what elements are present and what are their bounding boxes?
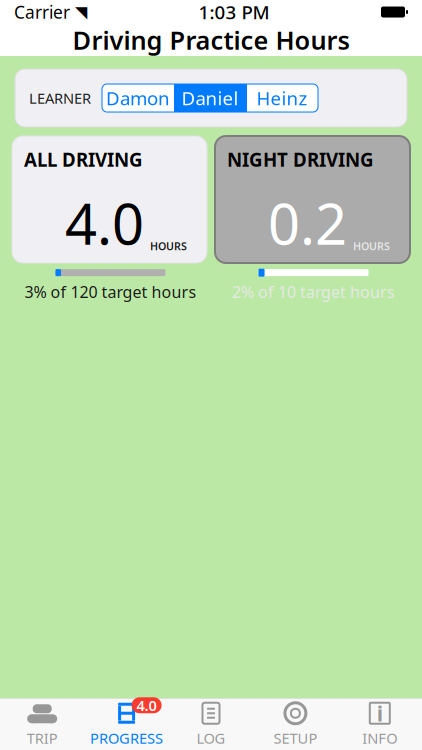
button[interactable]: i xyxy=(338,700,422,748)
button[interactable]: Daniel xyxy=(174,84,246,112)
staticText: ◥ xyxy=(70,3,87,21)
staticText: PROGRESS xyxy=(90,728,163,748)
button[interactable]: SETUP xyxy=(253,700,338,748)
staticText: Heinz xyxy=(256,86,307,110)
staticText: LEARNER xyxy=(29,88,91,108)
staticText: INFO xyxy=(362,728,397,748)
staticText: TRIP xyxy=(27,728,58,748)
staticText: NIGHT DRIVING xyxy=(227,147,374,172)
staticText: HOURS xyxy=(353,239,390,253)
button[interactable]: Heinz xyxy=(246,84,318,112)
staticText: Driving Practice Hours xyxy=(72,23,349,57)
staticText: 0.2 xyxy=(268,186,347,260)
staticText: HOURS xyxy=(150,239,187,253)
staticText: i xyxy=(377,699,383,727)
staticText: SETUP xyxy=(273,728,317,748)
staticText: 4.0 xyxy=(65,186,144,260)
staticText: LOG xyxy=(196,728,225,748)
staticText: Carrier xyxy=(14,0,70,23)
staticText: 2% of 10 target hours xyxy=(232,281,395,302)
button[interactable]: TRIP xyxy=(0,700,84,748)
staticText: 3% of 120 target hours xyxy=(24,281,196,302)
staticText: Daniel xyxy=(181,86,238,110)
staticText: 1:03 PM xyxy=(198,0,269,24)
staticText: 4.0 xyxy=(137,695,157,715)
button[interactable]: Damon xyxy=(102,84,174,112)
button[interactable]: LOG xyxy=(169,700,253,748)
button[interactable]: 4.0 xyxy=(84,700,169,748)
staticText: ALL DRIVING xyxy=(24,147,143,172)
staticText: Damon xyxy=(106,86,170,110)
